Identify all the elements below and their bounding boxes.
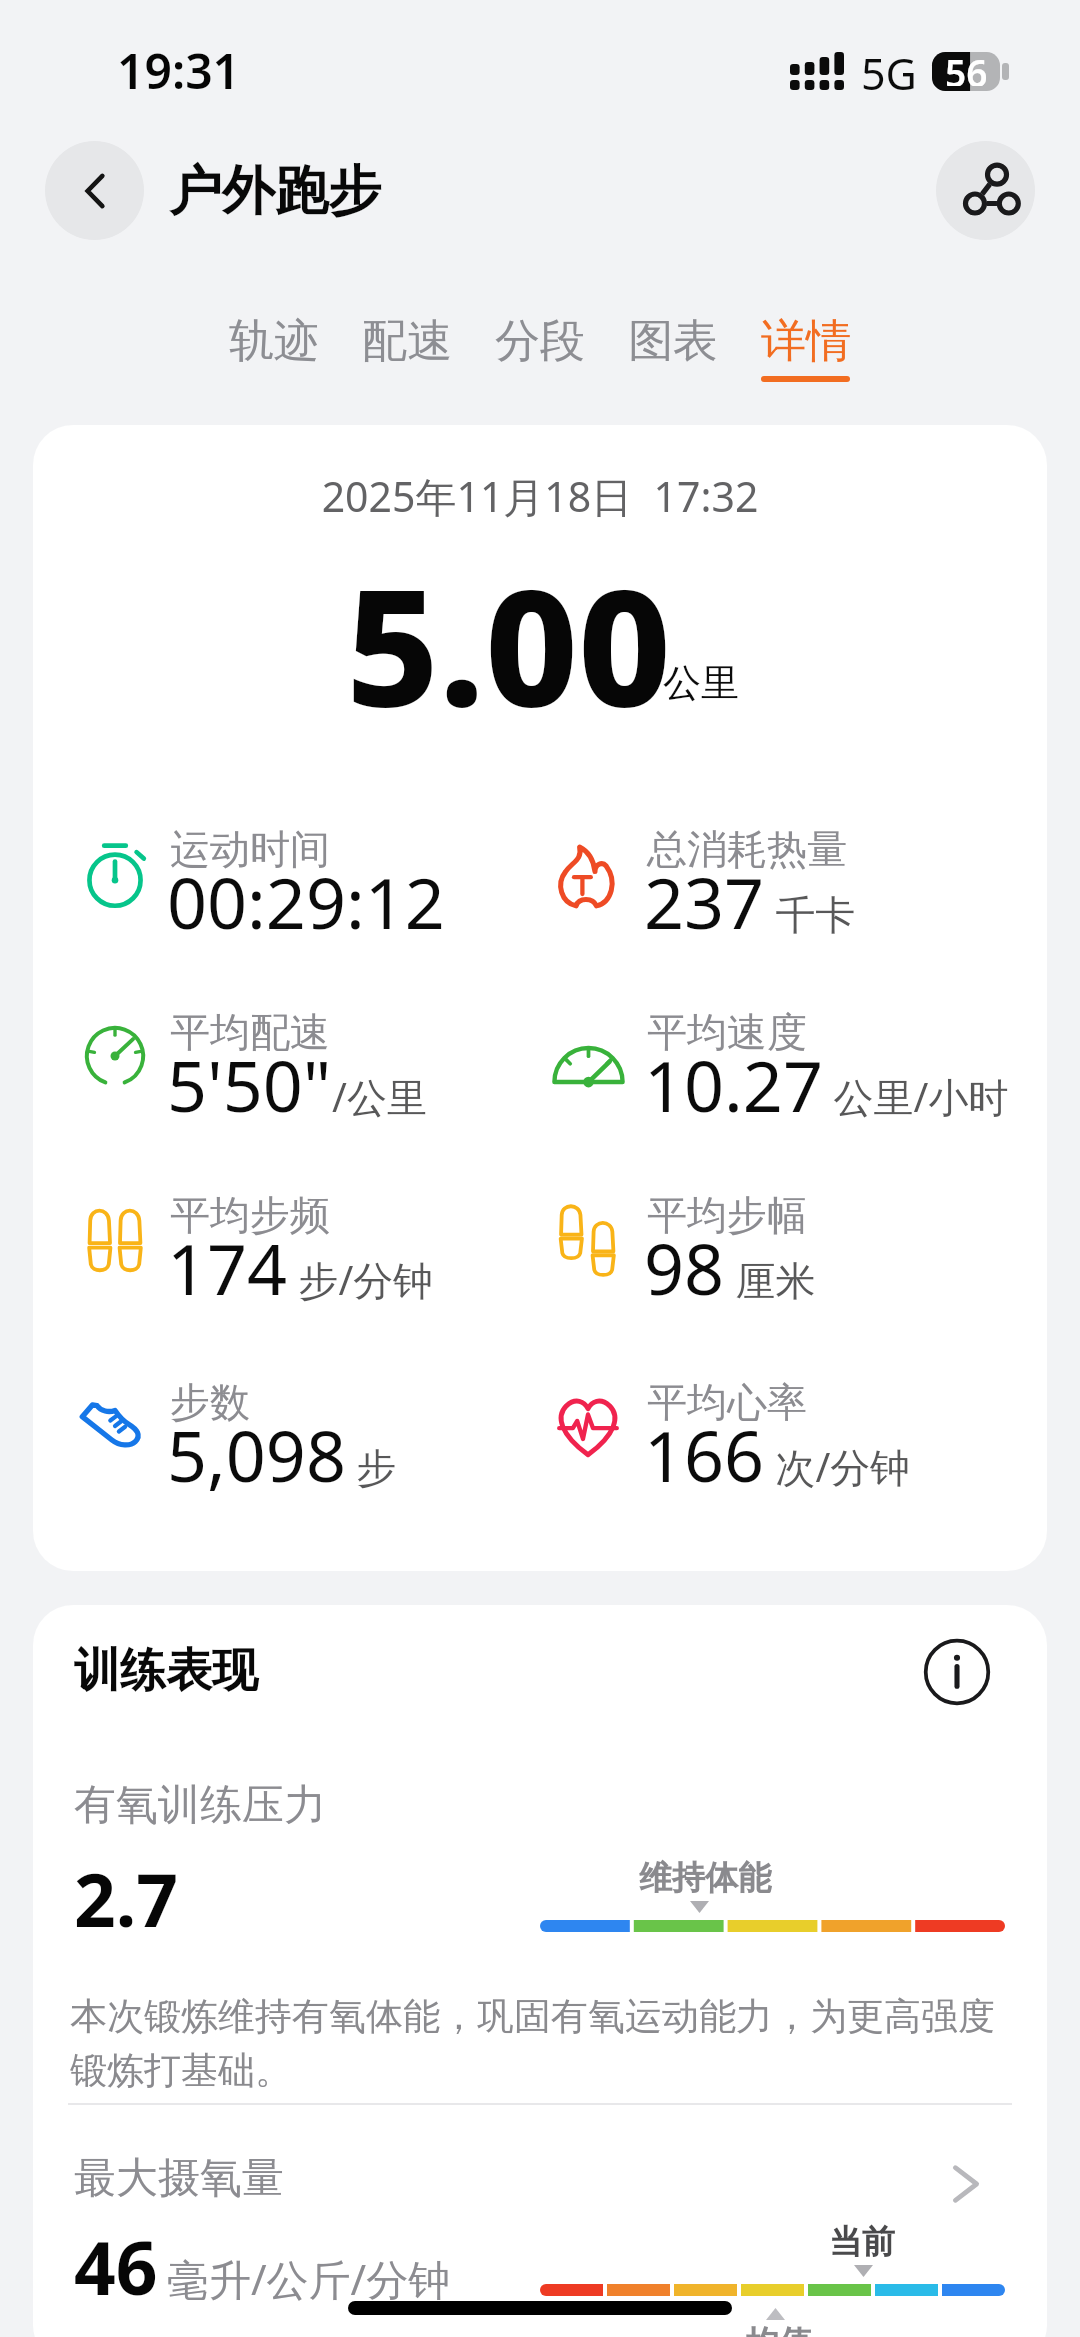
staticText: 毫升/公斤/分钟 — [167, 2250, 451, 2307]
staticText: 5'50" — [167, 1037, 332, 1132]
staticText: 2025年11月18日 17:32 — [33, 468, 1047, 524]
staticText: 维持体能 — [639, 1857, 771, 1899]
staticText: 56 — [945, 47, 988, 86]
staticText: 厘米 — [725, 1252, 816, 1307]
staticText: 5G — [861, 44, 917, 103]
staticText: 总消耗热量 — [647, 824, 847, 874]
button[interactable]: 配速 — [348, 313, 465, 373]
button[interactable]: 图表 — [614, 313, 731, 373]
staticText: 10.27 — [644, 1037, 823, 1132]
staticText: 训练表现 — [74, 1642, 258, 1700]
staticText: 轨迹 — [229, 313, 319, 370]
staticText: /公里 — [332, 1069, 427, 1124]
staticText: 图表 — [628, 313, 718, 370]
staticText: 有氧训练压力 — [74, 1779, 326, 1832]
staticText: 次/分钟 — [765, 1439, 911, 1494]
staticText: 5,098 — [167, 1407, 346, 1502]
staticText: 步 — [346, 1439, 397, 1494]
staticText: 98 — [644, 1220, 725, 1315]
staticText: 174 — [167, 1220, 288, 1315]
staticText: 步/分钟 — [288, 1252, 434, 1307]
staticText: 千卡 — [765, 886, 856, 941]
staticText: 平均心率 — [647, 1377, 807, 1427]
staticText: 运动时间 — [170, 824, 330, 874]
button[interactable]: 轨迹 — [215, 313, 332, 373]
staticText: 步数 — [170, 1377, 250, 1427]
staticText: 配速 — [362, 313, 452, 370]
button[interactable]: 详情 — [747, 313, 864, 373]
staticText: 00:29:12 — [167, 854, 445, 949]
staticText: 166 — [644, 1407, 765, 1502]
staticText: 锻炼打基础。 — [70, 2047, 292, 2094]
staticText: 平均速度 — [647, 1007, 807, 1057]
staticText: 46 — [74, 2217, 158, 2316]
staticText: 19:31 — [117, 38, 241, 103]
staticText: 公里/小时 — [823, 1069, 1009, 1124]
button[interactable]: 分段 — [481, 313, 598, 373]
staticText: 5.00 — [346, 534, 672, 753]
staticText: 均值 — [746, 2322, 812, 2337]
staticText: 平均配速 — [170, 1007, 330, 1057]
button[interactable]: Share — [936, 141, 1035, 240]
staticText: 237 — [644, 854, 765, 949]
staticText: 2.7 — [74, 1849, 179, 1948]
staticText: 平均步幅 — [647, 1190, 807, 1240]
staticText: 最大摄氧量 — [74, 2152, 284, 2205]
button[interactable] — [33, 2140, 1047, 2240]
button[interactable]: Info — [921, 1636, 993, 1708]
staticText: 平均步频 — [170, 1190, 330, 1240]
staticText: 当前 — [829, 2221, 895, 2263]
staticText: 本次锻炼维持有氧体能，巩固有氧运动能力，为更高强度 — [70, 1993, 995, 2040]
button[interactable]: Back — [45, 141, 144, 240]
staticText: 详情 — [761, 313, 851, 370]
staticText: 分段 — [495, 313, 585, 370]
staticText: 户外跑步 — [169, 158, 381, 225]
staticText: 公里 — [663, 659, 739, 707]
